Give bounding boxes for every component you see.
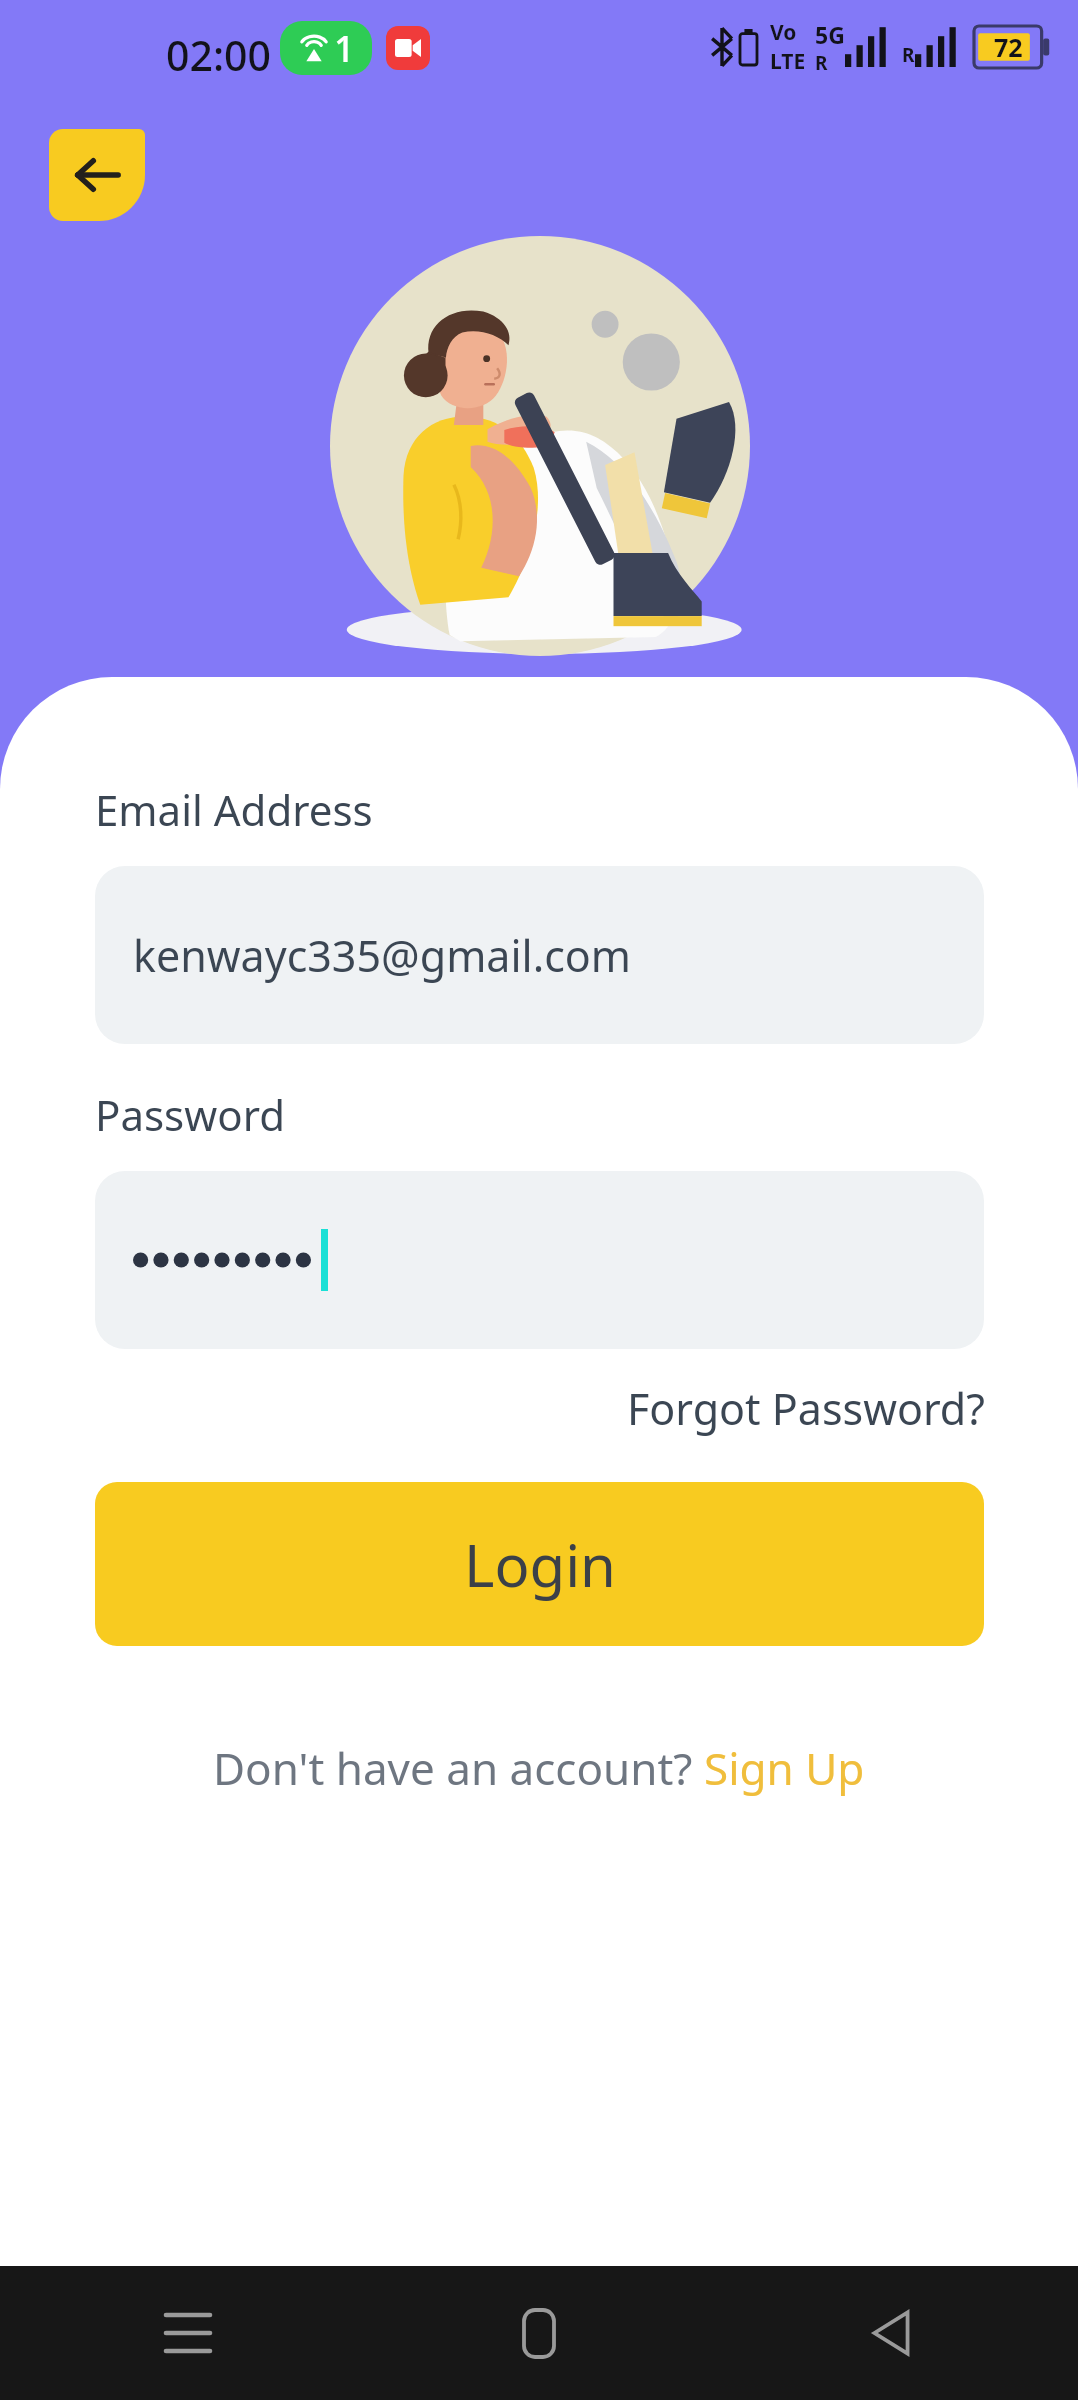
- button[interactable]: Back: [818, 2266, 963, 2400]
- button[interactable]: Home: [466, 2266, 611, 2400]
- staticText: Login: [464, 1525, 616, 1604]
- staticText: Password: [95, 1086, 285, 1143]
- button[interactable]: Recent apps: [115, 2266, 260, 2400]
- staticText: kenwayc335@gmail.com: [133, 926, 632, 985]
- staticText: 1: [334, 24, 355, 73]
- staticText: R: [815, 50, 828, 76]
- staticText: Email Address: [95, 781, 373, 838]
- staticText: Sign Up: [704, 1738, 865, 1798]
- staticText: LTE: [770, 47, 806, 76]
- staticText: Forgot Password?: [627, 1379, 985, 1438]
- staticText: 5G: [815, 19, 845, 50]
- button[interactable]: kenwayc335@gmail.com: [95, 866, 984, 1044]
- staticText: Vo: [770, 18, 797, 47]
- button[interactable]: Sign Up: [704, 1738, 865, 1798]
- staticText: Don't have an account?: [213, 1738, 704, 1798]
- staticText: R: [902, 42, 915, 68]
- button[interactable]: Forgot Password?: [627, 1379, 985, 1438]
- button[interactable]: Login: [95, 1482, 984, 1646]
- staticText: 02:00: [166, 27, 271, 83]
- button[interactable]: [95, 1171, 984, 1349]
- staticText: 72: [994, 30, 1023, 64]
- button[interactable]: Back: [49, 129, 145, 221]
